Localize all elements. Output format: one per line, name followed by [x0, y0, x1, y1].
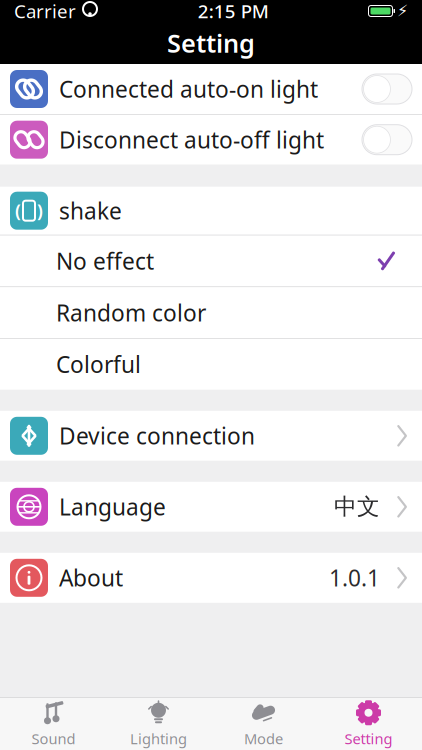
staticText: Connected auto-on light — [59, 74, 318, 104]
button[interactable]: Mode — [211, 698, 316, 750]
staticText: Disconnect auto-off light — [59, 125, 324, 155]
staticText: Sound — [31, 729, 75, 748]
button[interactable]: No effect — [0, 235, 422, 286]
staticText: 中文 — [334, 493, 380, 521]
staticText: Setting — [167, 26, 255, 60]
staticText: Device connection — [59, 421, 255, 451]
button[interactable]: Random color — [0, 287, 422, 338]
staticText: ⚡︎ — [397, 2, 408, 20]
staticText: 2:15 PM — [198, 0, 269, 23]
staticText: About — [59, 563, 123, 593]
staticText: No effect — [56, 246, 154, 276]
button[interactable]: Device connection — [0, 411, 422, 461]
staticText: Language — [59, 492, 166, 522]
button[interactable]: About — [0, 553, 422, 603]
button[interactable]: Connected auto-on light — [0, 64, 422, 114]
staticText: ) — [37, 199, 43, 222]
staticText: Colorful — [56, 349, 141, 379]
staticText: Lighting — [130, 729, 187, 748]
staticText: 1.0.1 — [329, 563, 380, 593]
button[interactable]: Sound — [1, 698, 106, 750]
button[interactable]: Colorful — [0, 339, 422, 390]
staticText: Random color — [56, 297, 206, 328]
staticText: Carrier — [14, 0, 76, 23]
staticText: ( — [15, 199, 21, 222]
button[interactable]: Disconnect auto-off light — [0, 115, 422, 165]
button[interactable]: Language — [0, 482, 422, 532]
staticText: shake — [59, 196, 122, 226]
staticText: Mode — [244, 729, 283, 748]
button[interactable]: Setting — [316, 698, 421, 750]
staticText: Setting — [344, 729, 392, 748]
button[interactable]: Lighting — [106, 698, 211, 750]
